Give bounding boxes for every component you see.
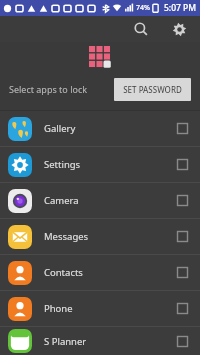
staticText: Select apps to lock	[9, 83, 88, 95]
staticText: Messages	[44, 230, 89, 243]
button[interactable]: Contacts	[0, 255, 200, 290]
staticText: SET PASSWORD	[123, 84, 182, 95]
button[interactable]: Gallery	[0, 111, 200, 146]
staticText: Phone	[44, 302, 73, 315]
staticText: Settings	[44, 158, 81, 171]
button[interactable]: Camera	[0, 183, 200, 218]
button[interactable]: SET PASSWORD	[114, 78, 191, 101]
staticText: Camera	[44, 194, 79, 207]
button[interactable]: Search	[130, 18, 152, 40]
staticText: 5:07 PM	[164, 2, 197, 14]
staticText: Gallery	[44, 122, 76, 135]
staticText: S Planner	[44, 335, 87, 348]
button[interactable]: Phone	[0, 291, 200, 326]
button[interactable]: Settings	[0, 147, 200, 182]
button[interactable]: Messages	[0, 219, 200, 254]
staticText: 74%	[136, 3, 150, 13]
staticText: Contacts	[44, 266, 83, 279]
button[interactable]: S Planner	[0, 327, 200, 355]
button[interactable]: Settings	[168, 18, 190, 40]
